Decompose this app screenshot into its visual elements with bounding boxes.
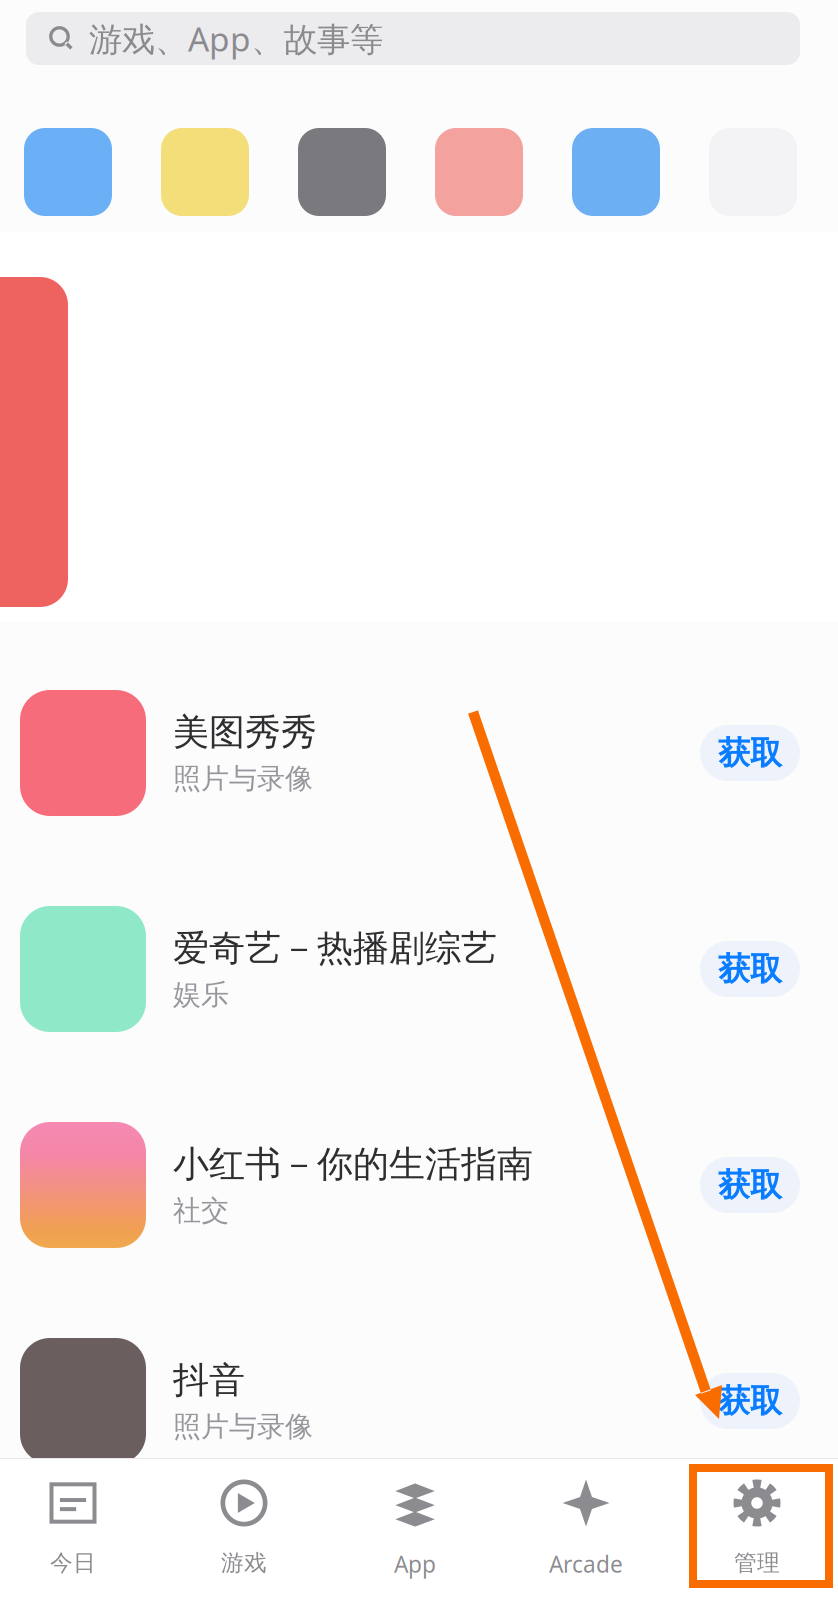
button[interactable]: 管理 xyxy=(673,1458,838,1600)
button[interactable]: App xyxy=(331,1458,499,1600)
staticText: 今日 xyxy=(50,1549,96,1577)
staticText: App xyxy=(394,1549,436,1579)
staticText: 获取 xyxy=(718,1165,782,1205)
staticText: 抖音 xyxy=(173,1358,245,1402)
staticText: 获取 xyxy=(718,1381,782,1421)
staticText: 社交 xyxy=(173,1193,229,1228)
button[interactable]: 小红书－你的生活指南 xyxy=(0,1077,838,1293)
button[interactable]: 搜索 xyxy=(26,12,800,65)
staticText: 照片与录像 xyxy=(173,1409,313,1444)
button[interactable]: 精选 App xyxy=(0,277,68,607)
button[interactable]: 爱奇艺－热播剧综艺 xyxy=(0,861,838,1077)
staticText: 照片与录像 xyxy=(173,761,313,796)
button[interactable]: Arcade xyxy=(502,1458,670,1600)
staticText: 获取 xyxy=(718,949,782,989)
button[interactable]: 游戏 xyxy=(160,1458,328,1600)
staticText: 游戏 xyxy=(221,1549,267,1577)
staticText: 娱乐 xyxy=(173,977,229,1012)
staticText: 美图秀秀 xyxy=(173,710,317,754)
button[interactable]: 游戏 xyxy=(24,128,112,216)
button[interactable]: 今日 xyxy=(0,1458,157,1600)
staticText: 爱奇艺－热播剧综艺 xyxy=(173,926,497,970)
button[interactable]: 工具 xyxy=(298,128,386,216)
staticText: 游戏、App、故事等 xyxy=(89,16,383,61)
button[interactable]: 社交 xyxy=(572,128,660,216)
staticText: 管理 xyxy=(734,1549,780,1577)
staticText: Arcade xyxy=(549,1549,623,1579)
button[interactable]: 生活 xyxy=(435,128,523,216)
button[interactable]: 效率 xyxy=(161,128,249,216)
button[interactable]: 抖音 xyxy=(0,1293,838,1509)
button[interactable]: 美图秀秀 xyxy=(0,645,838,861)
staticText: 小红书－你的生活指南 xyxy=(173,1142,533,1186)
staticText: 获取 xyxy=(718,733,782,773)
